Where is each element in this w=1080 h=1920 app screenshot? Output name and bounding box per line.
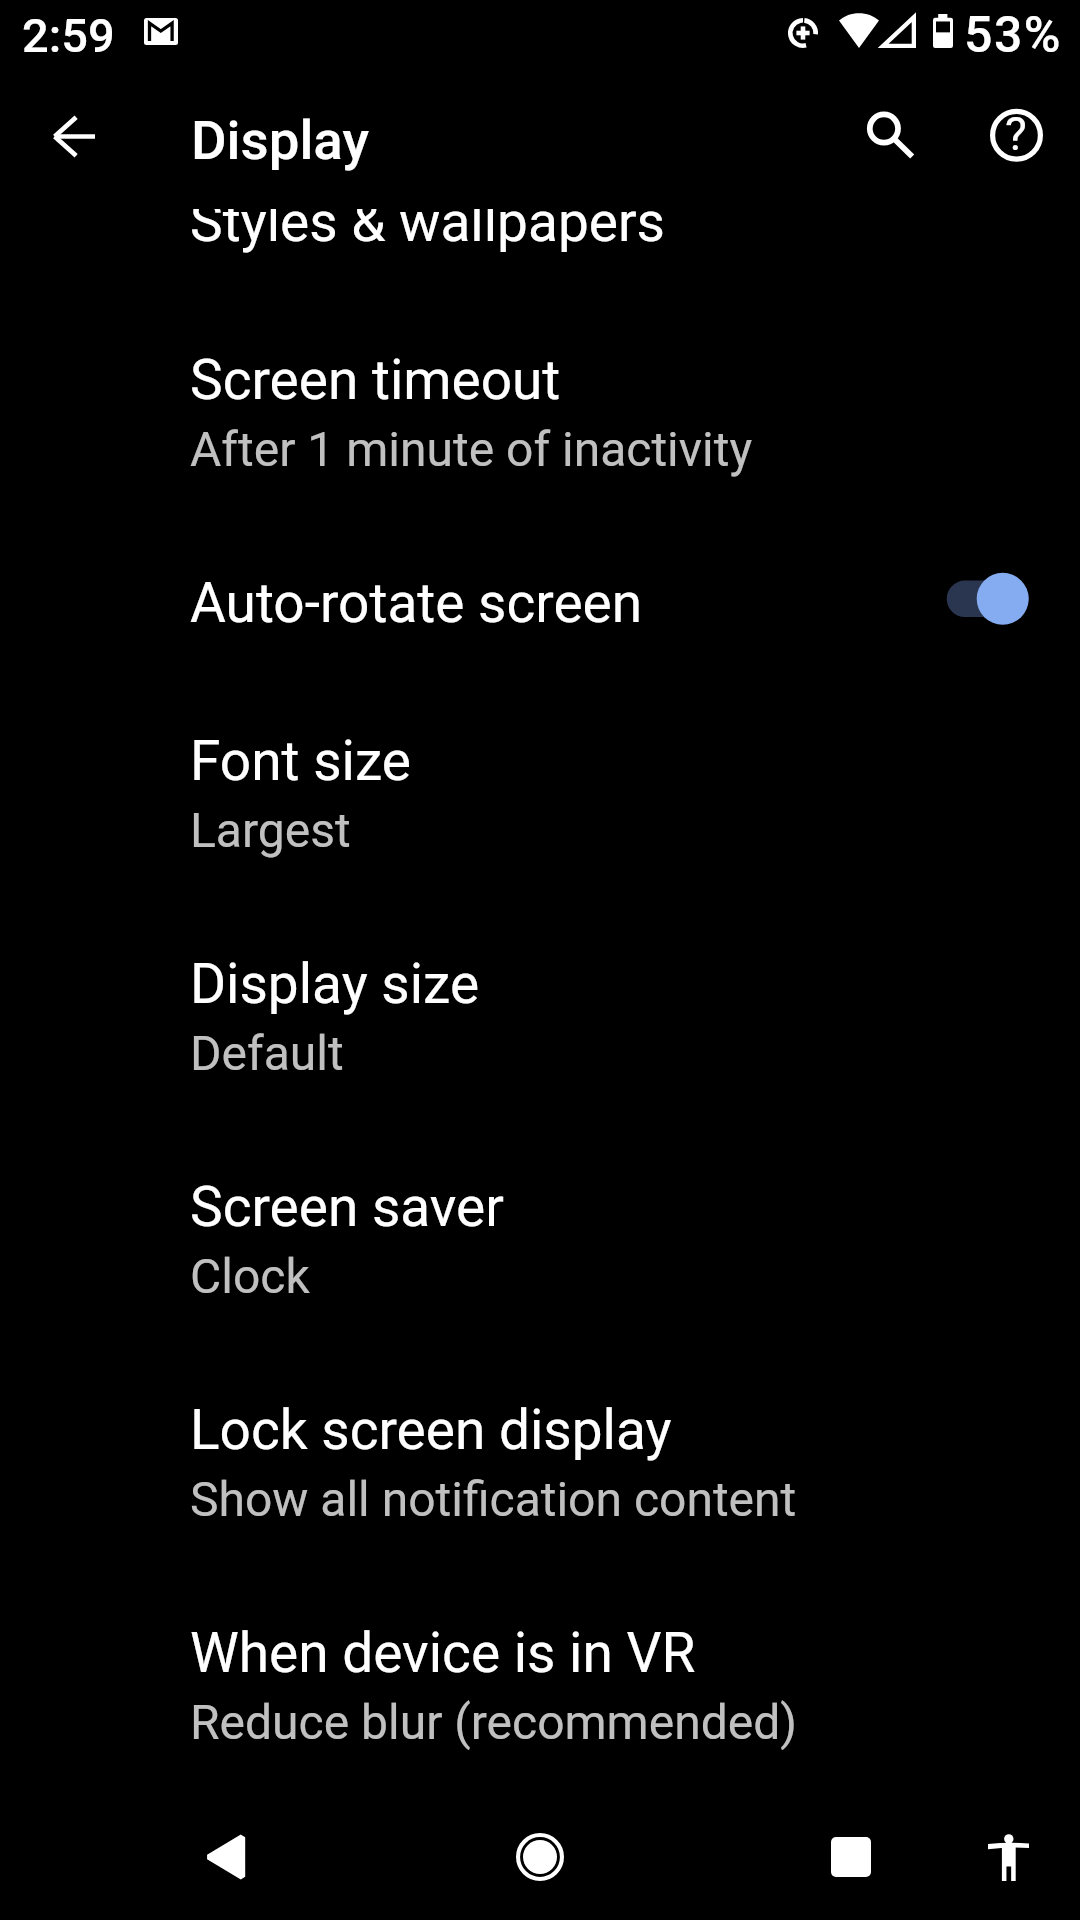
button[interactable]: Font size [0,719,1080,942]
staticText: Auto-rotate screen [190,571,643,635]
button[interactable]: Back [165,1797,285,1917]
button[interactable]: Accessibility [948,1797,1068,1917]
staticText: Show all notification content [190,1471,797,1527]
staticText: After 1 minute of inactivity [190,421,753,477]
staticText: Screen timeout [190,348,561,412]
staticText: Screen saver [190,1175,504,1239]
button[interactable]: Auto-rotate screen [921,561,1051,637]
staticText: Display [191,108,369,172]
button[interactable]: Screen saver [0,1165,1080,1388]
staticText: When device is in VR [190,1621,696,1685]
button[interactable]: Display size [0,942,1080,1165]
button[interactable]: Search [830,82,938,190]
staticText: Styles & wallpapers [190,209,665,254]
button[interactable]: Screen timeout [0,338,1080,561]
staticText: Lock screen display [190,1398,672,1462]
staticText: 2:59 [22,8,115,63]
staticText: ? [1005,107,1027,161]
staticText: Display size [190,952,480,1016]
button[interactable]: Help [962,82,1070,190]
staticText: Clock [190,1248,310,1304]
button[interactable]: Home [480,1797,600,1917]
staticText: Largest [190,802,351,858]
button[interactable]: When device is in VR [0,1611,1080,1834]
button[interactable]: Recent apps [791,1797,911,1917]
button[interactable]: Lock screen display [0,1388,1080,1611]
staticText: Reduce blur (recommended) [190,1694,797,1750]
staticText: 53% [964,6,1063,65]
staticText: Default [190,1025,344,1081]
button[interactable]: Auto-rotate screen [0,561,1080,719]
button[interactable]: Navigate up [20,82,128,190]
staticText: Font size [190,729,411,793]
button[interactable]: Styles & wallpapers [0,209,1080,338]
